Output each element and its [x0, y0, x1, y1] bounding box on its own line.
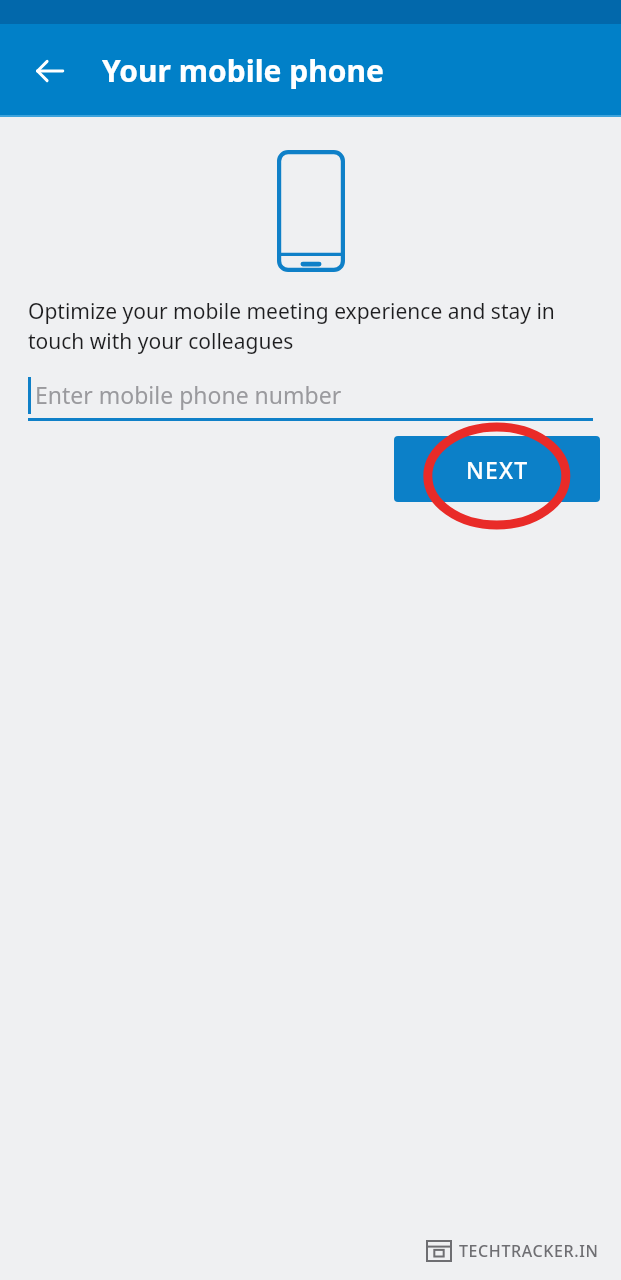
staticText: NEXT	[466, 454, 529, 485]
staticText: Enter mobile phone number	[35, 379, 342, 410]
button[interactable]: Enter mobile phone number	[28, 375, 593, 421]
staticText: TECHTRACKER.IN	[459, 1240, 599, 1262]
button[interactable]: Back	[22, 43, 78, 99]
staticText: Your mobile phone	[102, 50, 384, 91]
button[interactable]: NEXT	[394, 436, 600, 502]
staticText: Optimize your mobile meeting experience …	[28, 297, 601, 355]
